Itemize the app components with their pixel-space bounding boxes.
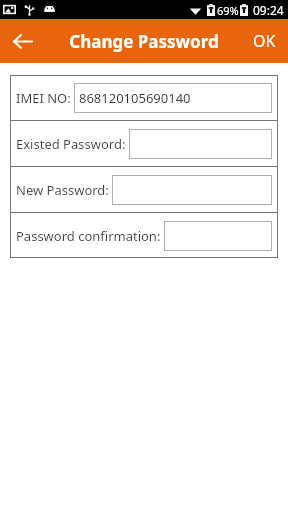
staticText: OK [253,30,276,52]
staticText: 09:24 [253,2,284,18]
button[interactable]: New Password: [10,167,278,212]
button[interactable]: Password confirmation: [10,213,278,258]
button[interactable]: IMEI NO: [10,75,278,120]
staticText: Change Password [69,30,219,53]
button[interactable]: Existed Password: [10,121,278,166]
button[interactable]: OK [241,19,288,63]
staticText: Existed Password: [16,135,126,153]
staticText: New Password: [16,181,109,199]
button[interactable]: Back [4,23,40,59]
staticText: Password confirmation: [16,227,161,245]
staticText: IMEI NO: [16,89,71,107]
staticText: 868120105690140 [79,89,191,107]
staticText: 69% [217,3,239,18]
